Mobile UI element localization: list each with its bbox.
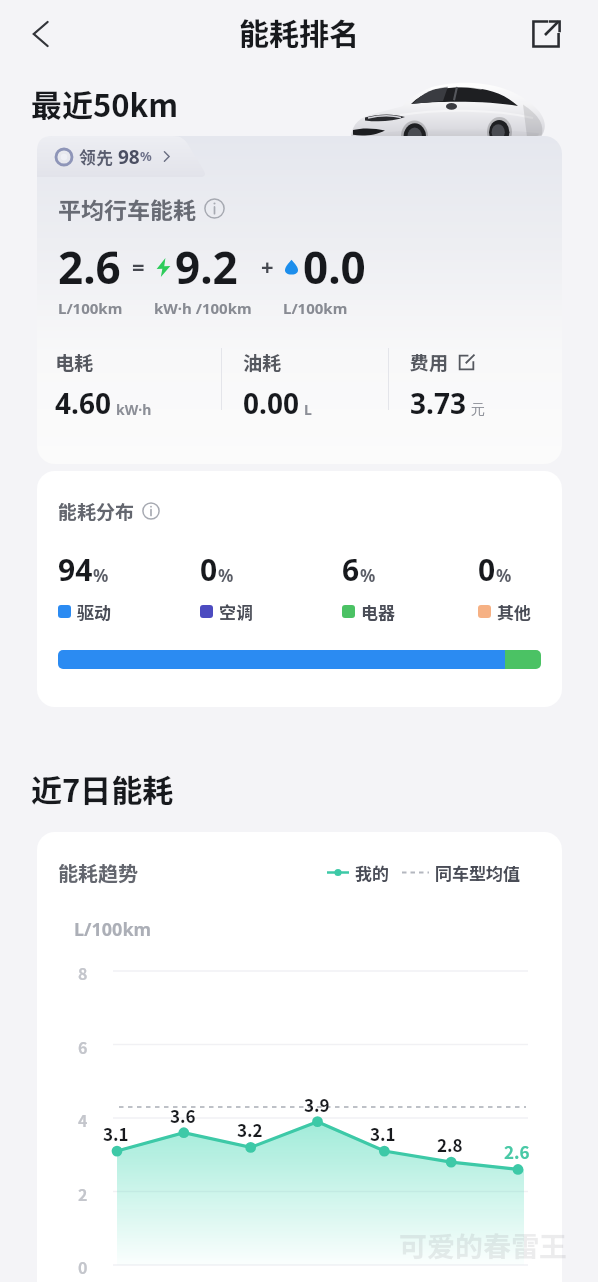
staticText: 3.73 [410, 384, 466, 422]
staticText: 近7日能耗 [31, 766, 174, 811]
button[interactable]: Back [15, 8, 67, 60]
staticText: + [261, 251, 274, 281]
staticText: = [132, 251, 145, 281]
staticText: kW·h /100km [154, 298, 252, 318]
staticText: % [140, 147, 152, 165]
button[interactable]: Edit cost [457, 353, 476, 372]
staticText: 能耗分布 [58, 497, 135, 525]
button[interactable]: Share [520, 8, 572, 60]
staticText: 平均行车能耗 [58, 192, 196, 225]
staticText: 4.60 [55, 384, 111, 422]
staticText: 2 [78, 1182, 88, 1205]
staticText: 4 [78, 1108, 88, 1131]
staticText: 能耗趋势 [58, 858, 138, 887]
staticText: 元 [471, 401, 485, 419]
staticText: L/100km [74, 917, 152, 942]
staticText: L/100km [283, 298, 348, 318]
button[interactable]: 领先 [37, 136, 207, 177]
staticText: 3.9 [304, 1092, 330, 1117]
staticText: 0 [200, 549, 218, 590]
staticText: 电耗 [55, 348, 94, 376]
staticText: 2.6 [58, 237, 121, 297]
staticText: 领先 [79, 144, 113, 169]
staticText: 费用 [410, 348, 449, 376]
staticText: 驱动 [77, 599, 111, 624]
staticText: 6 [78, 1035, 88, 1058]
staticText: 2.6 [504, 1139, 530, 1164]
staticText: 其他 [497, 599, 531, 624]
staticText: 同车型均值 [435, 860, 520, 885]
staticText: 空调 [219, 599, 253, 624]
staticText: % [360, 564, 376, 587]
staticText: 电器 [361, 599, 395, 624]
staticText: % [93, 564, 109, 587]
staticText: 我的 [355, 860, 389, 885]
staticText: 3.2 [237, 1117, 263, 1142]
staticText: 94 [58, 549, 93, 590]
staticText: L [304, 400, 312, 419]
staticText: L/100km [58, 298, 123, 318]
staticText: 0.0 [303, 237, 366, 297]
staticText: 油耗 [243, 348, 282, 376]
staticText: kW·h [116, 400, 152, 419]
staticText: 6 [342, 549, 360, 590]
staticText: 最近50km [31, 81, 179, 126]
staticText: 3.1 [370, 1121, 396, 1146]
staticText: 3.6 [170, 1103, 196, 1128]
staticText: 98 [118, 144, 140, 170]
staticText: 0 [78, 1255, 88, 1278]
staticText: 9.2 [175, 237, 238, 297]
staticText: % [496, 564, 512, 587]
staticText: 2.8 [437, 1132, 463, 1157]
staticText: 0 [478, 549, 496, 590]
staticText: 8 [78, 961, 88, 984]
staticText: 3.1 [103, 1121, 129, 1146]
staticText: % [218, 564, 234, 587]
staticText: 能耗排名 [239, 10, 359, 53]
staticText: 0.00 [243, 384, 299, 422]
staticText: 可爱的春雷王 [399, 1225, 568, 1266]
